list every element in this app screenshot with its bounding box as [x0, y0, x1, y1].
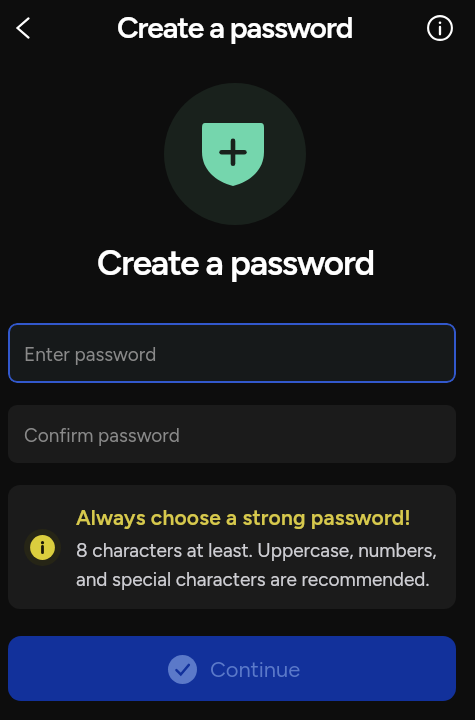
staticText: Create a password	[0, 242, 471, 284]
staticText: 8 characters at least. Uppercase, number…	[76, 539, 448, 591]
staticText: Continue	[210, 656, 301, 682]
button[interactable]: Back	[1, 6, 45, 50]
button[interactable]: Continue	[8, 636, 456, 701]
staticText: Create a password	[117, 9, 353, 45]
staticText: Enter password	[24, 343, 157, 366]
button[interactable]: Information	[418, 6, 462, 50]
staticText: Always choose a strong password!	[76, 505, 411, 530]
button[interactable]: Enter password	[8, 323, 456, 383]
staticText: Confirm password	[24, 424, 180, 447]
button[interactable]: Confirm password	[8, 405, 456, 463]
